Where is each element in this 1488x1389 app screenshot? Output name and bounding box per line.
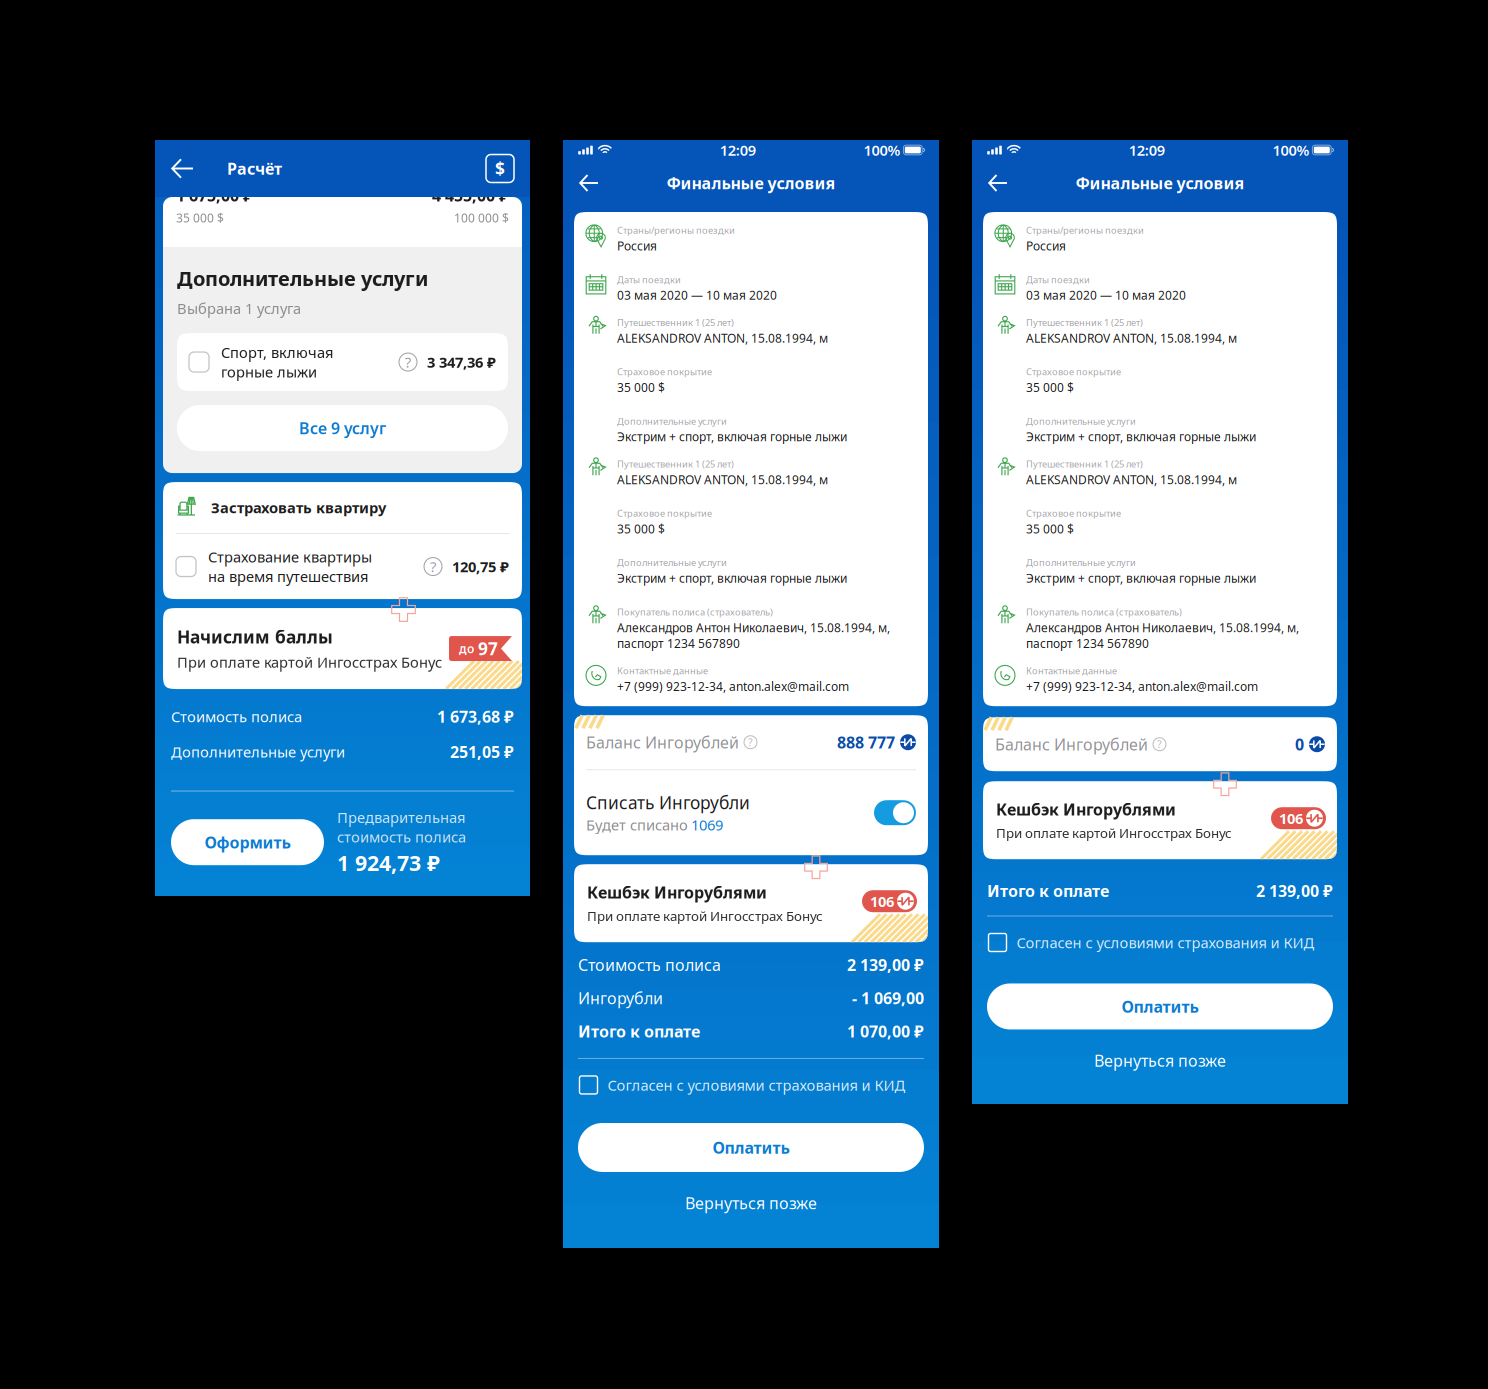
staticText: Россия <box>1026 238 1066 254</box>
staticText: Даты поездки <box>1026 273 1090 286</box>
staticText: ALEKSANDROV ANTON, 15.08.1994, м <box>1026 330 1237 346</box>
staticText: ALEKSANDROV ANTON, 15.08.1994, м <box>617 471 828 487</box>
staticText: 100 000 $ <box>454 210 509 226</box>
staticText: Страховое покрытие <box>617 365 712 378</box>
staticText: 100% <box>1272 140 1309 160</box>
staticText: Путешественник 1 (25 лет) <box>1026 458 1143 470</box>
staticText: 35 000 $ <box>617 521 665 537</box>
staticText: 03 мая 2020 — 10 мая 2020 <box>617 287 777 303</box>
staticText: Путешественник 1 (25 лет) <box>617 316 734 329</box>
staticText: Экстрим + спорт, включая горные лыжи <box>1026 429 1256 445</box>
staticText: Начислим баллы <box>177 625 333 648</box>
staticText: 97 <box>478 637 498 660</box>
button[interactable]: Назад <box>563 160 615 206</box>
staticText: Страховое покрытие <box>1026 507 1121 519</box>
staticText: +7 (999) 923-12-34, anton.alex@mail.com <box>1026 678 1258 694</box>
staticText: 35 000 $ <box>617 379 665 395</box>
staticText: Путешественник 1 (25 лет) <box>1026 316 1143 329</box>
staticText: ALEKSANDROV ANTON, 15.08.1994, м <box>617 330 828 346</box>
button[interactable]: Согласен с условиями страхования и КИД <box>988 922 1331 962</box>
staticText: 106 <box>870 891 894 911</box>
staticText: 1069 <box>691 815 723 834</box>
staticText: ALEKSANDROV ANTON, 15.08.1994, м <box>1026 471 1237 487</box>
staticText: Оформить <box>204 832 290 853</box>
staticText: Страны/регионы поездки <box>617 224 735 236</box>
button[interactable]: Спорт, включая горные лыжи <box>177 333 508 391</box>
staticText: Согласен с условиями страхования и КИД <box>607 1075 905 1095</box>
staticText: 1 673,68 ₽ <box>437 706 514 727</box>
staticText: Вернуться позже <box>685 1192 817 1213</box>
staticText: $ <box>495 157 505 180</box>
staticText: Экстрим + спорт, включая горные лыжи <box>1026 570 1256 586</box>
button[interactable]: Вернуться позже <box>578 1183 924 1223</box>
staticText: 1 924,73 ₽ <box>337 848 440 877</box>
staticText: 1 675,00 ₽ <box>176 185 253 206</box>
staticText: Все 9 услуг <box>299 417 386 439</box>
staticText: Баланс Ингорублей <box>586 732 739 753</box>
staticText: Стоимость полиса <box>578 954 721 975</box>
button[interactable]: Оплатить <box>578 1123 924 1172</box>
button[interactable]: Назад <box>972 160 1024 206</box>
staticText: Застраховать квартиру <box>211 498 386 517</box>
staticText: Стоимость полиса <box>171 707 302 726</box>
staticText: Страхование квартиры на время путешестви… <box>208 547 372 586</box>
staticText: Контактные данные <box>1026 664 1117 677</box>
button[interactable]: Все 9 услуг <box>177 405 508 451</box>
staticText: Выбрана 1 услуга <box>177 299 301 318</box>
staticText: 100% <box>863 140 900 160</box>
staticText: Страховое покрытие <box>617 507 712 519</box>
staticText: Оплатить <box>712 1137 789 1158</box>
staticText: 35 000 $ <box>1026 379 1074 395</box>
staticText: 0 <box>1295 734 1304 755</box>
staticText: 12:09 <box>1129 140 1165 160</box>
staticText: Покупатель полиса (страхователь) <box>617 606 773 618</box>
staticText: ? <box>1157 737 1162 751</box>
staticText: 12:09 <box>720 140 756 160</box>
staticText: Экстрим + спорт, включая горные лыжи <box>617 570 847 586</box>
staticText: Итого к оплате <box>578 1021 700 1042</box>
staticText: Контактные данные <box>617 664 708 677</box>
staticText: Кешбэк Ингорублями <box>996 799 1176 820</box>
staticText: 888 777 <box>837 732 895 753</box>
staticText: При оплате картой Ингосстрах Бонус <box>177 652 442 672</box>
staticText: При оплате картой Ингосстрах Бонус <box>587 907 823 925</box>
staticText: Дополнительные услуги <box>1026 556 1136 569</box>
button[interactable]: Оформить <box>171 819 324 865</box>
staticText: Баланс Ингорублей <box>995 734 1148 755</box>
button[interactable]: Вернуться позже <box>987 1040 1333 1080</box>
button[interactable]: Назад <box>155 140 227 197</box>
staticText: Будет списано <box>586 815 688 834</box>
staticText: 251,05 ₽ <box>450 741 514 762</box>
staticText: 4 455,00 ₽ <box>432 185 509 206</box>
staticText: 3 347,36 ₽ <box>427 352 496 372</box>
staticText: 1 070,00 ₽ <box>847 1021 924 1042</box>
staticText: Дополнительные услуги <box>171 742 345 762</box>
staticText: 120,75 ₽ <box>452 557 509 576</box>
staticText: Итого к оплате <box>987 880 1109 901</box>
staticText: При оплате картой Ингосстрах Бонус <box>996 824 1232 842</box>
staticText: Финальные условия <box>666 172 835 194</box>
staticText: ? <box>430 557 436 576</box>
staticText: - 1 069,00 <box>852 987 924 1009</box>
staticText: Спорт, включая горные лыжи <box>221 343 333 382</box>
button[interactable]: Согласен с условиями страхования и КИД <box>579 1065 922 1105</box>
button[interactable]: Валюта <box>486 154 530 182</box>
staticText: ? <box>748 735 753 749</box>
staticText: Списать Ингорубли <box>586 791 750 814</box>
staticText: Дополнительные услуги <box>617 415 727 427</box>
staticText: 35 000 $ <box>176 210 224 226</box>
staticText: Дополнительные услуги <box>1026 415 1136 427</box>
staticText: ? <box>405 352 411 372</box>
staticText: Александров Антон Николаевич, 15.08.1994… <box>1026 619 1299 651</box>
staticText: Страны/регионы поездки <box>1026 224 1144 236</box>
button[interactable]: Страхование квартиры на время путешестви… <box>163 534 522 599</box>
staticText: 35 000 $ <box>1026 521 1074 537</box>
button[interactable]: Оплатить <box>987 983 1333 1029</box>
button[interactable]: Списать Ингорубли <box>574 770 928 855</box>
staticText: Кешбэк Ингорублями <box>587 882 767 903</box>
staticText: Финальные условия <box>1075 172 1244 194</box>
staticText: Дополнительные услуги <box>177 265 428 292</box>
staticText: +7 (999) 923-12-34, anton.alex@mail.com <box>617 678 849 694</box>
staticText: 2 139,00 ₽ <box>1256 880 1333 901</box>
staticText: Дополнительные услуги <box>617 556 727 569</box>
